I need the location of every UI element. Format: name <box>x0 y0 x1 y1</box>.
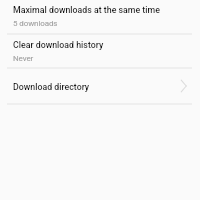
staticText: Download directory <box>13 82 90 92</box>
staticText: 5 downloads <box>13 19 58 28</box>
button[interactable]: Clear download history <box>0 35 200 67</box>
other: Choose download directory <box>177 79 191 93</box>
staticText: Maximal downloads at the same time <box>13 5 160 15</box>
button[interactable]: Download directory <box>0 68 200 103</box>
button[interactable]: Maximal downloads at the same time <box>0 0 200 34</box>
staticText: Clear download history <box>13 40 104 50</box>
staticText: Never <box>13 54 34 63</box>
